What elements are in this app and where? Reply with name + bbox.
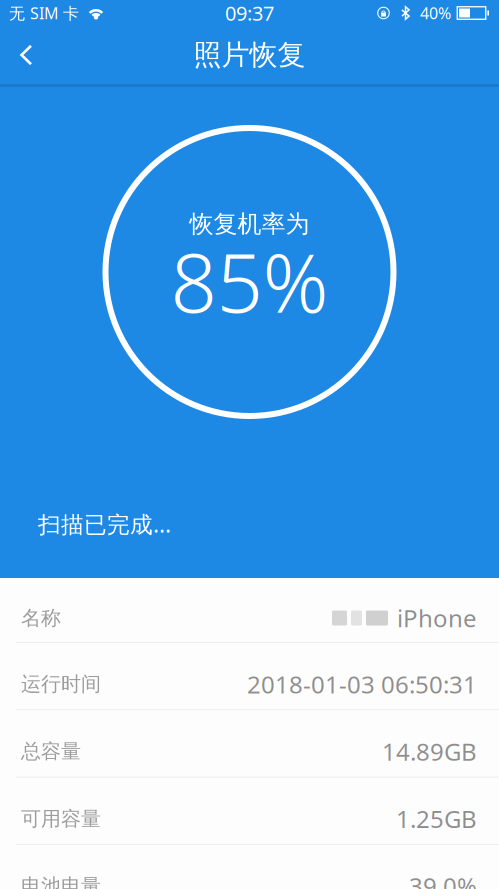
button[interactable]: 运行时间 <box>0 643 499 709</box>
button[interactable]: 总容量 <box>0 710 499 777</box>
button[interactable]: Back <box>0 26 52 84</box>
staticText: 总容量 <box>21 739 81 764</box>
staticText: 可用容量 <box>21 806 101 831</box>
staticText: 名称 <box>21 606 61 630</box>
staticText: 09:37 <box>225 0 274 26</box>
staticText: 14.89GB <box>382 735 477 767</box>
staticText: iPhone <box>397 602 477 634</box>
staticText: 39.0% <box>409 870 477 889</box>
staticText: 电池电量 <box>21 874 101 889</box>
staticText: 照片恢复 <box>193 38 305 72</box>
staticText: 2018-01-03 06:50:31 <box>247 668 477 700</box>
staticText: 扫描已完成... <box>38 509 171 539</box>
button[interactable]: 可用容量 <box>0 778 499 844</box>
button[interactable]: 名称 <box>0 578 499 642</box>
button[interactable]: 电池电量 <box>0 845 499 889</box>
staticText: 1.25GB <box>396 803 477 835</box>
staticText: 恢复机率为 <box>189 209 309 239</box>
staticText: 无 SIM 卡 <box>9 2 79 24</box>
staticText: 运行时间 <box>21 672 101 696</box>
staticText: 40% <box>420 2 451 24</box>
staticText: 85% <box>170 227 328 335</box>
